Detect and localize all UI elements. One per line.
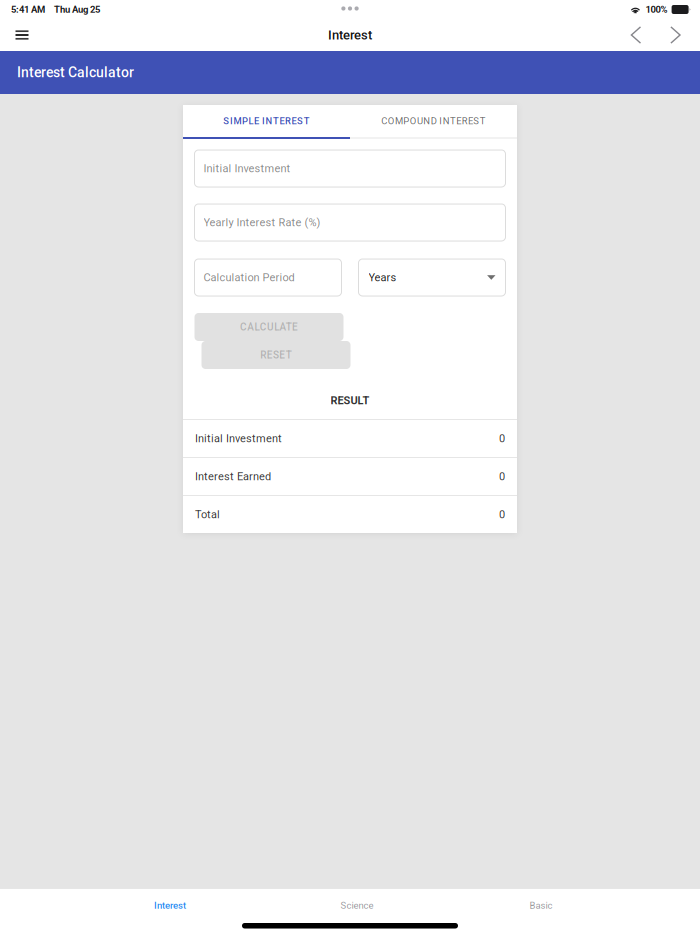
staticText: Initial Investment: [195, 432, 282, 445]
staticText: Interest Calculator: [17, 64, 134, 81]
staticText: RESULT: [330, 394, 369, 407]
button[interactable]: Science: [264, 889, 450, 922]
button[interactable]: RESET: [201, 341, 350, 369]
button[interactable]: CALCULATE: [194, 313, 343, 341]
button[interactable]: Initial Investment: [194, 150, 505, 187]
button[interactable]: COMPOUND INTEREST: [350, 105, 517, 137]
button[interactable]: Yearly Interest Rate (%): [194, 204, 505, 241]
button[interactable]: Years: [358, 259, 505, 296]
staticText: RESET: [260, 349, 292, 361]
staticText: COMPOUND INTEREST: [381, 115, 486, 127]
staticText: 5:41 AM: [11, 4, 45, 15]
staticText: Interest: [154, 900, 186, 911]
staticText: Basic: [529, 900, 552, 911]
button[interactable]: Basic: [450, 889, 632, 922]
button[interactable]: SIMPLE INTEREST: [183, 105, 350, 137]
staticText: 100%: [646, 4, 668, 15]
button[interactable]: Forward: [656, 19, 695, 51]
staticText: 0: [499, 508, 505, 521]
button[interactable]: Calculation Period: [194, 259, 341, 296]
staticText: Yearly Interest Rate (%): [203, 216, 320, 229]
staticText: Initial Investment: [203, 162, 290, 175]
staticText: Interest: [328, 27, 372, 43]
staticText: Science: [340, 900, 373, 911]
button[interactable]: Back: [616, 19, 656, 51]
staticText: CALCULATE: [240, 321, 298, 333]
button[interactable]: Menu: [0, 19, 44, 51]
staticText: 0: [499, 470, 505, 483]
staticText: Total: [195, 508, 220, 521]
staticText: Calculation Period: [203, 271, 294, 284]
staticText: SIMPLE INTEREST: [223, 115, 310, 126]
staticText: Interest Earned: [195, 470, 271, 483]
staticText: Thu Aug 25: [54, 4, 100, 15]
staticText: Years: [368, 271, 396, 284]
button[interactable]: Interest: [76, 889, 264, 922]
staticText: 0: [499, 432, 505, 445]
